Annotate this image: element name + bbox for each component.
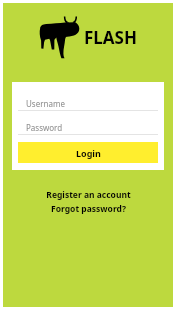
button[interactable]: Login (18, 142, 158, 163)
staticText: Register an account (46, 189, 131, 201)
button[interactable]: Forgot password? (3, 202, 173, 216)
staticText: Login (76, 147, 101, 159)
staticText: Forgot password? (51, 203, 126, 215)
staticText: Username (26, 98, 65, 109)
staticText: Password (26, 122, 63, 133)
button[interactable]: Register an account (3, 188, 173, 202)
staticText: FLASH (84, 26, 137, 49)
